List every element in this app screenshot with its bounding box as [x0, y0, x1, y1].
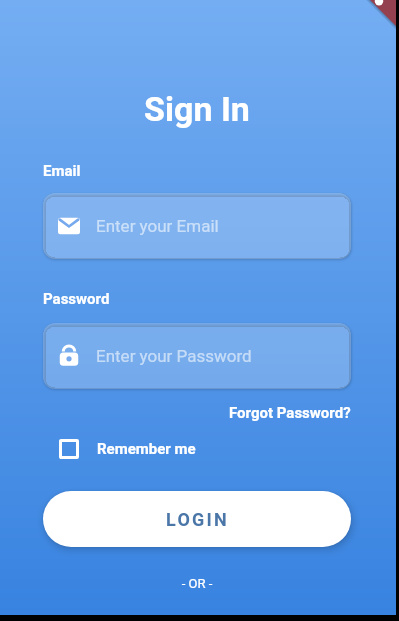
staticText: Enter your Password — [96, 346, 252, 366]
button[interactable]: Forgot Password? — [229, 404, 351, 422]
staticText: Sign In — [43, 89, 351, 129]
staticText: LOGIN — [166, 509, 229, 530]
button[interactable]: Enter your Email — [43, 193, 351, 259]
staticText: Enter your Email — [96, 216, 219, 236]
staticText: - OR - — [43, 576, 351, 591]
button[interactable]: Remember me — [59, 439, 196, 459]
staticText: Remember me — [97, 440, 196, 458]
staticText: Email — [43, 162, 81, 180]
staticText: Password — [43, 290, 110, 308]
button[interactable]: Enter your Password — [43, 323, 351, 389]
button[interactable]: LOGIN — [43, 491, 351, 547]
